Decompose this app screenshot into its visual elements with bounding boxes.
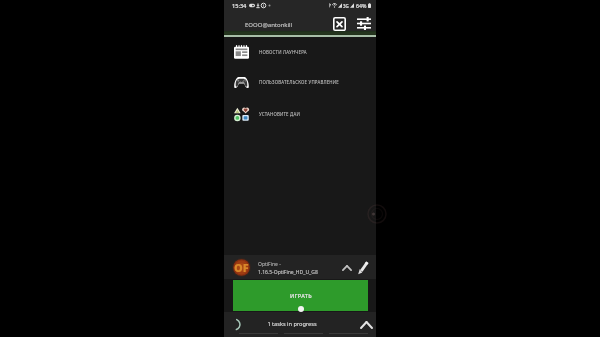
- staticText: 3G: [343, 3, 349, 9]
- staticText: 64%: [356, 2, 367, 9]
- staticText: УСТАНОВИТЕ ДАИ: [259, 111, 300, 117]
- button[interactable]: 1 tasks in progress: [224, 312, 376, 337]
- button[interactable]: УСТАНОВИТЕ ДАИ: [224, 106, 376, 122]
- button[interactable]: Expand tasks: [355, 316, 377, 334]
- staticText: 15:34: [232, 2, 247, 10]
- staticText: 1 tasks in progress: [267, 320, 317, 328]
- button[interactable]: ПОЛЬЗОВАТЕЛЬСКОЕ УПРАВЛЕНИЕ: [224, 74, 376, 90]
- staticText: 1.16.5-OptiFine_HD_U_G8: [258, 269, 318, 276]
- button[interactable]: Clear: [329, 12, 349, 35]
- staticText: ПОЛЬЗОВАТЕЛЬСКОЕ УПРАВЛЕНИЕ: [259, 79, 339, 85]
- button[interactable]: Expand profile: [336, 259, 357, 276]
- staticText: ИГРАТЬ: [290, 292, 312, 299]
- staticText: НОВОСТИ ЛАУНЧЕРА: [259, 49, 307, 55]
- button[interactable]: Settings: [354, 12, 374, 35]
- staticText: EOOO@antonkill: [245, 21, 293, 29]
- button[interactable]: Edit profile: [353, 256, 372, 278]
- button[interactable]: OF: [224, 255, 376, 279]
- staticText: OptiFine -: [258, 261, 281, 268]
- button[interactable]: НОВОСТИ ЛАУНЧЕРА: [224, 44, 376, 60]
- button[interactable]: ИГРАТЬ: [233, 280, 368, 311]
- staticText: OF: [234, 260, 249, 275]
